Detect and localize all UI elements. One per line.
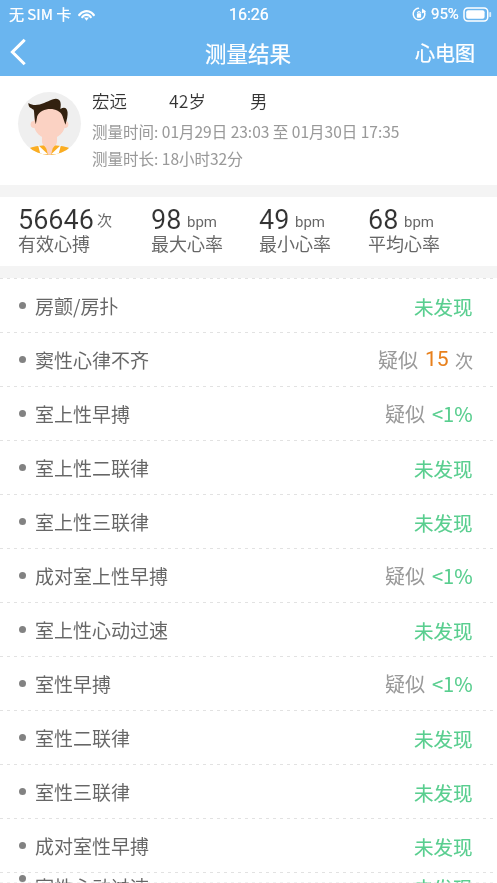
staticText: 未发现 [414,454,473,482]
staticText: 未发现 [414,724,473,752]
staticText: 98 [151,204,182,236]
button[interactable]: 室上性二联律 [0,441,497,494]
staticText: 15 [425,347,449,372]
staticText: 室性早搏 [35,670,112,698]
staticText: 平均心率 [368,230,440,256]
button[interactable]: 室性二联律 [0,711,497,764]
staticText: 未发现 [414,616,473,644]
staticText: <1% [432,561,473,590]
button[interactable]: 室上性心动过速 [0,603,497,656]
staticText: 有效心搏 [18,230,90,256]
staticText: 窦性心律不齐 [35,346,150,374]
staticText: 房颤/房扑 [35,292,119,320]
staticText: 最大心率 [151,230,223,256]
button[interactable]: 房颤/房扑 [0,279,497,332]
staticText: 95% [431,5,459,23]
staticText: 室上性早搏 [35,400,131,428]
button[interactable]: 成对室性早搏 [0,819,497,872]
staticText: 室上性二联律 [35,454,150,482]
staticText: <1% [432,669,473,698]
staticText: 疑似 [385,561,425,590]
staticText: 次 [455,347,473,373]
staticText: 测量时间: 01月29日 23:03 至 01月30日 17:35 [92,120,400,142]
staticText: 宏远 [92,88,127,113]
button[interactable]: 心电图 [401,28,497,76]
staticText: 68 [368,204,399,236]
staticText: bpm [404,213,434,231]
staticText: 无 SIM 卡 [9,3,72,25]
staticText: 室上性心动过速 [35,616,169,644]
staticText: 心电图 [415,38,475,67]
staticText: 室上性三联律 [35,508,150,536]
staticText: 49 [259,204,290,236]
staticText: bpm [295,213,325,231]
staticText: 疑似 [385,669,425,698]
staticText: bpm [187,213,217,231]
button[interactable]: 室性心动过速 [0,873,497,883]
staticText: 室性二联律 [35,724,131,752]
staticText: 测量结果 [205,37,292,68]
button[interactable]: Back [0,28,35,76]
staticText: 测量时长: 18小时32分 [92,147,243,169]
staticText: 室性三联律 [35,778,131,806]
staticText: 疑似 [378,345,418,374]
staticText: 最小心率 [259,230,331,256]
staticText: 成对室性早搏 [35,832,150,860]
staticText: <1% [432,399,473,428]
staticText: 室性心动过速 [35,873,150,883]
button[interactable]: 室性早搏 [0,657,497,710]
staticText: 疑似 [385,399,425,428]
button[interactable]: 室上性三联律 [0,495,497,548]
staticText: 成对室上性早搏 [35,562,169,590]
staticText: 42岁 [169,88,206,113]
button[interactable]: 室上性早搏 [0,387,497,440]
staticText: 16:26 [229,5,269,24]
staticText: 未发现 [414,292,473,320]
button[interactable]: 成对室上性早搏 [0,549,497,602]
staticText: 未发现 [414,778,473,806]
button[interactable]: 窦性心律不齐 [0,333,497,386]
staticText: 次 [97,209,113,231]
staticText: 未发现 [414,873,473,883]
staticText: 未发现 [414,508,473,536]
staticText: 未发现 [414,832,473,860]
button[interactable]: 室性三联律 [0,765,497,818]
staticText: 男 [250,88,268,113]
staticText: 56646 [18,204,94,236]
